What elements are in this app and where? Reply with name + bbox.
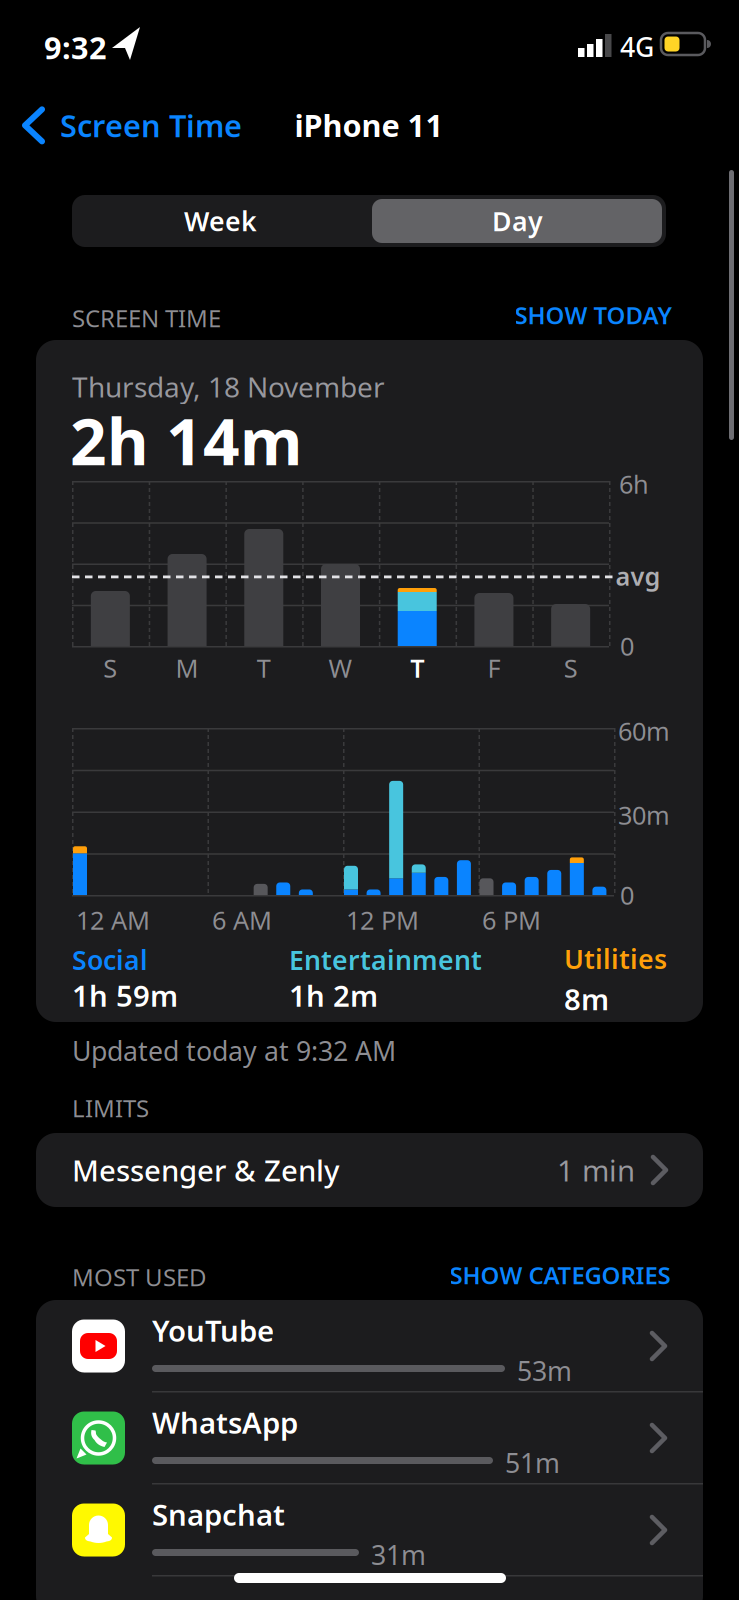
staticText: LIMITS: [72, 1092, 149, 1124]
staticText: 1h 2m: [289, 976, 378, 1015]
staticText: 6 PM: [482, 903, 541, 937]
staticText: 0: [620, 878, 634, 912]
staticText: Messenger & Zenly: [72, 1150, 339, 1189]
staticText: Week: [184, 203, 257, 239]
staticText: S: [103, 651, 117, 685]
button[interactable]: Screen Time: [22, 105, 242, 146]
staticText: WhatsApp: [152, 1403, 298, 1442]
staticText: iPhone 11: [294, 105, 443, 145]
staticText: 60m: [618, 714, 670, 748]
staticText: Snapchat: [152, 1495, 285, 1534]
button[interactable]: Messenger & Zenly: [36, 1133, 703, 1207]
staticText: 2h 14m: [70, 398, 302, 483]
staticText: 12 PM: [346, 903, 419, 937]
button[interactable]: Snapchat: [36, 1484, 703, 1576]
staticText: MOST USED: [72, 1261, 207, 1293]
staticText: T: [257, 651, 271, 685]
staticText: 12 AM: [76, 903, 150, 937]
staticText: 1h 59m: [72, 976, 178, 1015]
button[interactable]: SHOW CATEGORIES: [449, 1259, 670, 1291]
staticText: Day: [492, 203, 543, 239]
staticText: Entertainment: [289, 942, 482, 977]
staticText: SHOW TODAY: [514, 299, 671, 331]
button[interactable]: Day: [369, 195, 666, 247]
staticText: 8m: [564, 979, 609, 1018]
staticText: YouTube: [152, 1311, 274, 1350]
button[interactable]: SHOW TODAY: [514, 299, 671, 331]
staticText: 51m: [505, 1445, 560, 1480]
button[interactable]: YouTube: [36, 1300, 703, 1392]
staticText: 9:32: [44, 27, 107, 68]
staticText: W: [328, 651, 352, 685]
staticText: 6 AM: [212, 903, 272, 937]
staticText: 31m: [371, 1537, 426, 1572]
staticText: M: [176, 651, 199, 685]
staticText: S: [564, 651, 578, 685]
staticText: SHOW CATEGORIES: [449, 1259, 670, 1291]
staticText: Updated today at 9:32 AM: [72, 1033, 396, 1068]
staticText: 53m: [517, 1353, 572, 1388]
button[interactable]: Week: [72, 195, 369, 247]
staticText: F: [487, 651, 500, 685]
staticText: SCREEN TIME: [72, 302, 221, 334]
staticText: 0: [620, 629, 634, 663]
staticText: Social: [72, 942, 148, 977]
staticText: avg: [615, 559, 660, 593]
staticText: Utilities: [564, 941, 667, 976]
staticText: 1 min: [557, 1150, 635, 1189]
button[interactable]: WhatsApp: [36, 1392, 703, 1484]
staticText: 30m: [618, 798, 670, 832]
staticText: 4G: [620, 29, 654, 64]
staticText: 6h: [619, 467, 649, 501]
staticText: T: [410, 651, 424, 685]
staticText: Thursday, 18 November: [72, 368, 385, 405]
staticText: Screen Time: [60, 105, 242, 146]
